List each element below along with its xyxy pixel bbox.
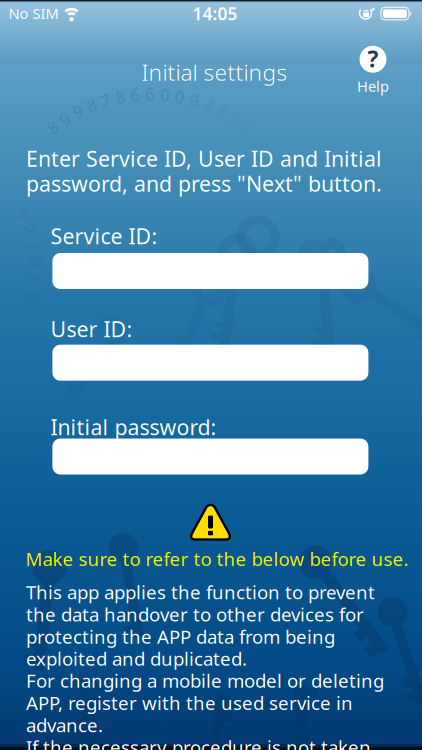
staticText: the data handover to other devices for — [26, 602, 364, 627]
staticText: Help — [357, 76, 389, 96]
staticText: 9 — [73, 100, 83, 123]
staticText: 5 — [17, 203, 27, 226]
staticText: 8 — [217, 100, 227, 123]
staticText: 8 — [48, 116, 58, 139]
staticText: No SIM — [8, 3, 58, 23]
staticText: 8 — [115, 85, 125, 108]
staticText: 14:05 — [192, 2, 237, 25]
staticText: 8 — [87, 94, 97, 117]
staticText: advance. — [26, 712, 103, 737]
staticText: ? — [367, 44, 378, 74]
staticText: This app applies the function to prevent — [26, 580, 375, 604]
staticText: 7 — [25, 283, 35, 306]
button[interactable]: Help — [357, 44, 389, 96]
staticText: Initial password: — [50, 413, 216, 441]
staticText: 9 — [31, 250, 41, 273]
staticText: 9 — [189, 89, 199, 112]
button[interactable]: User ID — [52, 345, 368, 381]
staticText: 3 — [17, 298, 27, 321]
button[interactable]: Initial password — [52, 438, 368, 474]
staticText: For changing a mobile model or deleting — [26, 668, 384, 693]
staticText: 0 — [160, 83, 170, 106]
staticText: Enter Service ID, User ID and Initial — [26, 144, 382, 173]
staticText: 6 — [145, 82, 155, 105]
staticText: 6 — [130, 83, 140, 106]
staticText: 0 — [175, 85, 185, 108]
staticText: 9 — [60, 107, 70, 130]
staticText: APP, register with the used service in — [26, 690, 353, 715]
staticText: Initial settings — [141, 57, 287, 87]
staticText: exploited and duplicated. — [26, 646, 247, 671]
staticText: 2 — [25, 217, 35, 240]
staticText: 4 — [203, 94, 213, 117]
staticText: Make sure to refer to the below before u… — [25, 546, 408, 571]
staticText: Service ID: — [50, 222, 157, 250]
staticText: 7 — [101, 89, 111, 112]
staticText: protecting the APP data from being — [26, 624, 335, 649]
staticText: User ID: — [50, 315, 132, 343]
staticText: If the necessary procedure is not taken — [26, 735, 371, 750]
button[interactable]: Service ID — [52, 253, 368, 289]
staticText: 8 — [29, 267, 39, 290]
staticText: password, and press "Next" button. — [26, 169, 382, 198]
